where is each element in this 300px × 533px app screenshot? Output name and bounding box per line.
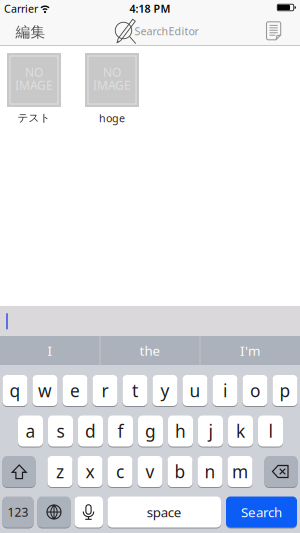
staticText: k xyxy=(236,419,245,442)
button[interactable]: i xyxy=(212,375,237,406)
button[interactable]: q xyxy=(2,375,27,406)
staticText: SearchEditor xyxy=(134,24,198,38)
staticText: n xyxy=(204,460,215,483)
staticText: テスト xyxy=(17,111,50,124)
button[interactable]: a xyxy=(18,415,43,446)
button[interactable]: n xyxy=(197,456,222,487)
button[interactable]: space xyxy=(107,496,221,527)
button[interactable]: w xyxy=(32,375,57,406)
button[interactable]: k xyxy=(228,415,253,446)
staticText: f xyxy=(117,419,123,442)
button[interactable]: g xyxy=(138,415,163,446)
staticText: o xyxy=(250,379,260,402)
button[interactable]: e xyxy=(62,375,87,406)
button[interactable]: b xyxy=(167,456,192,487)
button[interactable]: Dictate xyxy=(74,496,103,527)
staticText: IMAGE xyxy=(93,77,131,93)
staticText: l xyxy=(268,419,272,442)
staticText: hoge xyxy=(99,111,125,125)
staticText: w xyxy=(38,379,52,402)
button[interactable]: m xyxy=(227,456,252,487)
button[interactable]: Search xyxy=(226,496,297,527)
staticText: e xyxy=(70,379,80,402)
button[interactable]: z xyxy=(47,456,72,487)
button[interactable]: h xyxy=(168,415,193,446)
button[interactable]: Delete xyxy=(264,456,297,487)
button[interactable]: 123 xyxy=(2,496,33,527)
staticText: I'm xyxy=(240,342,260,359)
staticText: i xyxy=(223,379,227,402)
staticText: I xyxy=(47,342,52,359)
button[interactable]: t xyxy=(122,375,147,406)
staticText: p xyxy=(279,379,290,402)
staticText: IMAGE xyxy=(15,77,53,93)
button[interactable]: y xyxy=(152,375,177,406)
staticText: the xyxy=(139,342,160,359)
staticText: t xyxy=(132,379,138,402)
button[interactable]: x xyxy=(77,456,102,487)
staticText: u xyxy=(189,379,200,402)
button[interactable]: f xyxy=(108,415,133,446)
button[interactable]: v xyxy=(137,456,162,487)
staticText: h xyxy=(175,419,186,442)
button[interactable]: s xyxy=(48,415,73,446)
staticText: 123 xyxy=(7,504,28,520)
button[interactable]: Next keyboard xyxy=(37,496,70,527)
staticText: NO xyxy=(25,64,43,80)
staticText: m xyxy=(232,460,248,483)
staticText: g xyxy=(145,419,156,442)
staticText: NO xyxy=(103,64,121,80)
button[interactable]: o xyxy=(242,375,267,406)
staticText: r xyxy=(101,379,108,402)
staticText: Carrier xyxy=(4,1,38,16)
button[interactable]: the xyxy=(101,336,199,365)
staticText: a xyxy=(25,419,35,442)
staticText: s xyxy=(56,419,64,442)
staticText: v xyxy=(145,460,154,483)
staticText: y xyxy=(160,379,169,402)
button[interactable]: NO xyxy=(85,53,139,122)
button[interactable]: r xyxy=(92,375,117,406)
button[interactable]: 編集 xyxy=(10,19,50,44)
staticText: q xyxy=(9,379,20,402)
staticText: z xyxy=(56,460,64,483)
button[interactable]: c xyxy=(107,456,132,487)
button[interactable]: Documents xyxy=(260,17,286,43)
staticText: d xyxy=(85,419,96,442)
button[interactable]: NO xyxy=(7,53,61,122)
button[interactable]: j xyxy=(198,415,223,446)
staticText: space xyxy=(147,503,182,521)
button[interactable]: d xyxy=(78,415,103,446)
button[interactable]: Shift xyxy=(2,456,35,487)
button[interactable]: u xyxy=(182,375,207,406)
staticText: c xyxy=(116,460,124,483)
button[interactable]: I xyxy=(1,336,99,365)
staticText: 編集 xyxy=(15,23,45,41)
button[interactable]: p xyxy=(272,375,297,406)
staticText: Search xyxy=(241,503,282,521)
staticText: 4:18 PM xyxy=(129,1,170,16)
staticText: x xyxy=(85,460,94,483)
button[interactable]: I'm xyxy=(201,336,299,365)
button[interactable]: l xyxy=(258,415,283,446)
staticText: b xyxy=(174,460,185,483)
staticText: j xyxy=(208,419,212,442)
